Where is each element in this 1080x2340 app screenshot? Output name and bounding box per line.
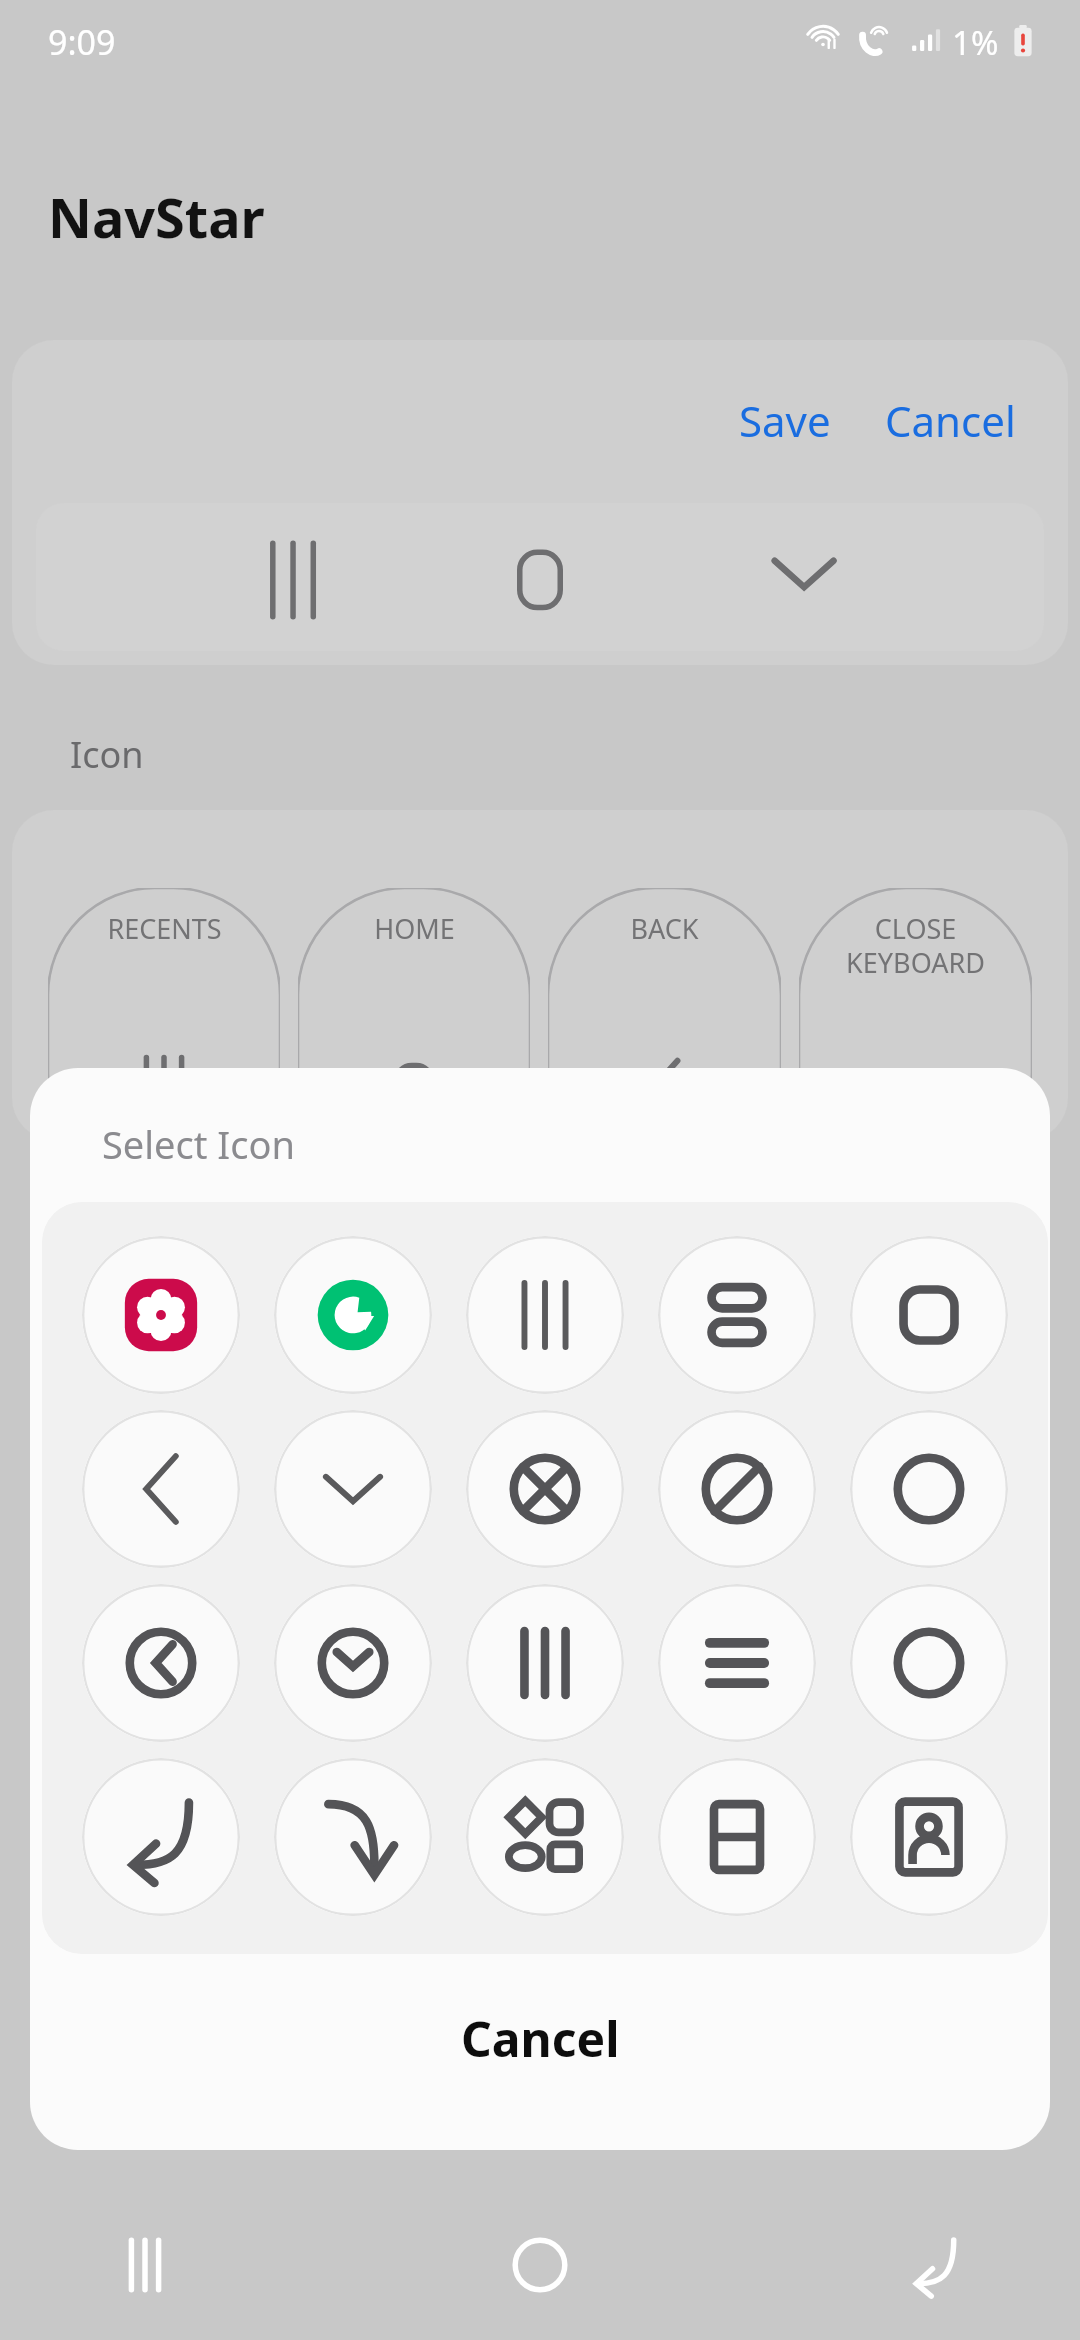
staticText: Cancel	[885, 392, 1016, 449]
button[interactable]: Icon 16	[65, 1758, 257, 1916]
staticText: RECENTS	[107, 910, 222, 947]
button[interactable]: Cancel	[879, 388, 1022, 453]
button[interactable]: Icon 15	[833, 1584, 1025, 1742]
button[interactable]: Icon 11	[65, 1584, 257, 1742]
staticText: BACK	[630, 910, 699, 947]
staticText: NavStar	[48, 180, 265, 254]
button[interactable]: Save	[733, 388, 837, 453]
button[interactable]: Icon 5	[833, 1236, 1025, 1394]
button[interactable]: Back	[870, 2200, 1000, 2330]
button[interactable]: Icon 9	[641, 1410, 833, 1568]
button[interactable]: Home	[475, 2200, 605, 2330]
button[interactable]: Cancel	[30, 1958, 1050, 2150]
button[interactable]: Icon 10	[833, 1410, 1025, 1568]
button[interactable]: Icon 4	[641, 1236, 833, 1394]
button[interactable]: Icon 3	[449, 1236, 641, 1394]
staticText: Select Icon	[102, 1118, 295, 1170]
staticText: CLOSE KEYBOARD	[846, 910, 985, 981]
button[interactable]: Icon 12	[257, 1584, 449, 1742]
button[interactable]: RECENTS	[48, 888, 280, 1140]
button[interactable]: HOME	[298, 888, 530, 1140]
button[interactable]: Icon 6	[65, 1410, 257, 1568]
button[interactable]: Icon 8	[449, 1410, 641, 1568]
staticText: 9:09	[48, 19, 116, 65]
button[interactable]: CLOSE KEYBOARD	[799, 888, 1032, 1140]
staticText: 1%	[952, 20, 999, 65]
staticText: HOME	[374, 910, 455, 947]
button[interactable]: Icon 2	[257, 1236, 449, 1394]
button[interactable]: Icon 20	[833, 1758, 1025, 1916]
staticText: Icon	[70, 730, 144, 779]
button[interactable]: Icon 13	[449, 1584, 641, 1742]
button[interactable]: Icon 19	[641, 1758, 833, 1916]
staticText: Save	[739, 392, 831, 449]
button[interactable]: BACK	[548, 888, 781, 1140]
staticText: Cancel	[461, 2006, 620, 2071]
button[interactable]: Icon 7	[257, 1410, 449, 1568]
button[interactable]: Icon 18	[449, 1758, 641, 1916]
button[interactable]: Icon 1	[65, 1236, 257, 1394]
button[interactable]: Icon 17	[257, 1758, 449, 1916]
button[interactable]: Icon 14	[641, 1584, 833, 1742]
button[interactable]: Recents	[80, 2200, 210, 2330]
